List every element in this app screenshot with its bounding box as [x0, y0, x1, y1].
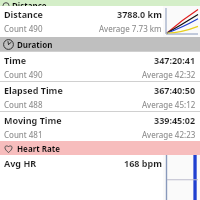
button[interactable]: Avg HR — [0, 155, 200, 200]
staticText: 3788.0 km — [117, 8, 162, 20]
other: Heart rate chart — [163, 155, 200, 200]
staticText: Avg HR — [4, 157, 37, 169]
staticText: Distance — [4, 8, 43, 20]
button[interactable]: Time — [0, 51, 200, 81]
staticText: Average 45:12 — [142, 99, 196, 110]
staticText: 339:45:02 — [154, 114, 196, 126]
staticText: Average 7.73 km — [99, 23, 162, 34]
button[interactable]: Distance — [0, 0, 200, 6]
staticText: Average 42:23 — [142, 129, 196, 140]
staticText: 168 bpm — [124, 157, 162, 169]
button[interactable]: Heart Rate — [0, 141, 200, 155]
staticText: Elapsed Time — [4, 84, 63, 96]
staticText: Count 481 — [4, 129, 43, 140]
button[interactable]: Distance — [0, 6, 200, 35]
staticText: Distance — [12, 0, 47, 6]
staticText: Moving Time — [4, 114, 62, 126]
staticText: 367:40:50 — [154, 84, 196, 96]
staticText: Count 490 — [4, 23, 43, 34]
button[interactable]: Duration — [0, 37, 200, 51]
staticText: Count 490 — [4, 69, 43, 80]
staticText: 347:20:41 — [154, 54, 196, 66]
staticText: Time — [4, 54, 27, 66]
staticText: Duration — [17, 39, 53, 50]
button[interactable]: Elapsed Time — [0, 81, 200, 111]
staticText: Heart Rate — [17, 143, 61, 154]
button[interactable]: Moving Time — [0, 111, 200, 141]
staticText: Average 42:32 — [142, 69, 196, 80]
staticText: Count 488 — [4, 99, 43, 110]
